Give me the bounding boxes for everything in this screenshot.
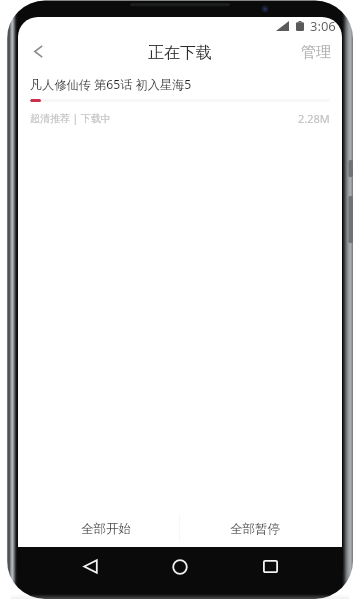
button[interactable]: 凡人修仙传 第65话 初入星海5 — [18, 76, 342, 126]
button[interactable]: 全部暂停 — [180, 505, 342, 547]
staticText: 正在下载 — [148, 43, 212, 63]
staticText: 全部暂停 — [230, 521, 280, 537]
button[interactable]: Back — [24, 37, 52, 65]
staticText: 超清推荐 | 下载中 — [30, 111, 111, 125]
button[interactable]: 全部开始 — [18, 505, 179, 547]
staticText: 凡人修仙传 第65话 初入星海5 — [30, 76, 192, 93]
button[interactable]: Home — [160, 547, 200, 586]
staticText: 2.28M — [298, 111, 330, 126]
other: Battery — [296, 21, 304, 31]
staticText: 全部开始 — [81, 521, 131, 537]
button[interactable]: Recent apps — [250, 547, 291, 586]
other: Signal strength — [276, 21, 289, 31]
button[interactable]: Back — [70, 547, 110, 586]
staticText: 3:06 — [310, 17, 336, 35]
staticText: 管理 — [301, 43, 331, 62]
button[interactable]: 管理 — [292, 38, 340, 66]
